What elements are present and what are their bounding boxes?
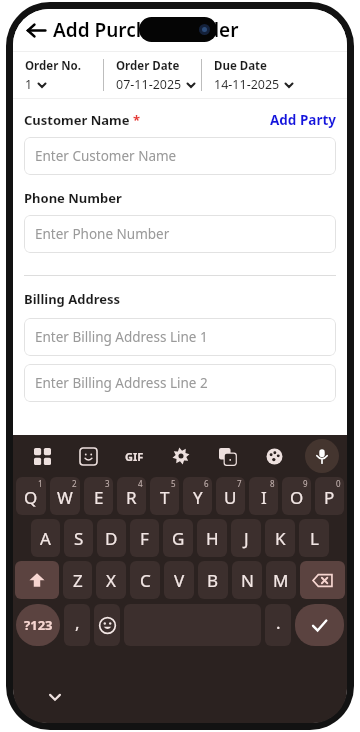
button[interactable]: Enter Phone Number	[24, 215, 336, 253]
button[interactable]: R	[117, 477, 146, 515]
staticText: G	[172, 527, 185, 550]
staticText: V	[174, 569, 185, 592]
staticText: P	[324, 486, 335, 509]
staticText: C	[140, 569, 151, 592]
staticText: 5	[171, 478, 176, 489]
staticText: 1	[38, 478, 43, 489]
button[interactable]: O	[282, 477, 311, 515]
button[interactable]: Enter	[295, 604, 344, 646]
button[interactable]: GIF	[111, 435, 157, 477]
staticText: U	[224, 486, 237, 509]
button[interactable]: Enter Customer Name	[24, 137, 336, 175]
staticText: N	[241, 569, 254, 592]
button[interactable]: L	[299, 519, 329, 557]
button[interactable]: M	[266, 561, 296, 599]
button[interactable]: ,	[64, 604, 90, 646]
staticText: X	[106, 569, 116, 592]
staticText: ,	[75, 611, 80, 634]
staticText: *	[133, 111, 141, 129]
button[interactable]: F	[130, 519, 159, 557]
staticText: B	[207, 569, 219, 592]
staticText: S	[74, 527, 84, 550]
staticText: J	[244, 527, 249, 550]
button[interactable]: G	[163, 519, 193, 557]
button[interactable]: Enter Billing Address Line 1	[24, 318, 336, 356]
staticText: GIF	[125, 449, 144, 464]
button[interactable]: D	[97, 519, 126, 557]
staticText: T	[160, 486, 170, 509]
button[interactable]: Emoji	[94, 604, 120, 646]
staticText: F	[140, 527, 149, 550]
staticText: Z	[73, 569, 83, 592]
staticText: 0	[336, 478, 341, 489]
staticText: 14-11-2025	[214, 76, 280, 93]
staticText: 2	[72, 478, 77, 489]
button[interactable]: .	[265, 604, 291, 646]
button[interactable]: Order No.	[25, 58, 103, 93]
button[interactable]: P	[315, 477, 344, 515]
staticText: ?123	[24, 616, 53, 634]
button[interactable]: Add Party	[270, 111, 336, 129]
button[interactable]: J	[231, 519, 261, 557]
button[interactable]: H	[197, 519, 227, 557]
staticText: D	[105, 527, 118, 550]
button[interactable]: V	[164, 561, 194, 599]
button[interactable]: I	[249, 477, 278, 515]
staticText: W	[57, 486, 73, 509]
button[interactable]: Stickers	[65, 435, 111, 477]
staticText: Y	[193, 486, 203, 509]
staticText: A	[40, 527, 51, 550]
staticText: Customer Name	[24, 111, 133, 129]
button[interactable]: C	[130, 561, 160, 599]
staticText: E	[94, 486, 104, 509]
staticText: 3	[105, 478, 110, 489]
staticText: 7	[237, 478, 242, 489]
staticText: L	[310, 527, 319, 550]
staticText: H	[206, 527, 219, 550]
button[interactable]: Hide keyboard	[43, 685, 67, 709]
button[interactable]: T	[150, 477, 179, 515]
button[interactable]: U	[216, 477, 245, 515]
staticText: 1	[25, 76, 33, 93]
button[interactable]: E	[84, 477, 113, 515]
button[interactable]: Q	[16, 477, 46, 515]
button[interactable]: X	[96, 561, 126, 599]
staticText: M	[273, 569, 289, 592]
button[interactable]: Voice input	[305, 439, 339, 473]
staticText: K	[275, 527, 286, 550]
staticText: R	[126, 486, 137, 509]
button[interactable]: B	[198, 561, 228, 599]
staticText: .	[276, 611, 281, 634]
staticText: 8	[270, 478, 275, 489]
button[interactable]: Y	[183, 477, 212, 515]
button[interactable]: N	[232, 561, 262, 599]
staticText: Enter Customer Name	[35, 147, 177, 165]
button[interactable]: Enter Billing Address Line 2	[24, 364, 336, 402]
staticText: Billing Address	[24, 290, 121, 308]
button[interactable]: Settings	[157, 435, 204, 477]
staticText: Enter Phone Number	[35, 225, 170, 243]
button[interactable]: S	[64, 519, 93, 557]
button[interactable]: Clipboard	[19, 435, 65, 477]
staticText: 9	[303, 478, 308, 489]
staticText: Add Party	[270, 111, 336, 129]
button[interactable]: Order Date	[116, 58, 201, 93]
button[interactable]: Themes	[251, 435, 298, 477]
staticText: 6	[204, 478, 209, 489]
button[interactable]: K	[265, 519, 295, 557]
button[interactable]: Translate	[204, 435, 251, 477]
staticText: Order Date	[116, 58, 180, 74]
staticText: Order No.	[25, 58, 82, 74]
button[interactable]: A	[31, 519, 60, 557]
button[interactable]: Back	[17, 11, 55, 49]
button[interactable]: Z	[63, 561, 92, 599]
button[interactable]: Shift	[15, 561, 59, 599]
button[interactable]: W	[50, 477, 80, 515]
button[interactable]: Backspace	[300, 561, 345, 599]
button[interactable]: Due Date	[214, 58, 347, 93]
staticText: Q	[24, 486, 38, 509]
staticText: O	[290, 486, 304, 509]
staticText: I	[261, 486, 267, 509]
button[interactable]: ?123	[16, 604, 60, 646]
